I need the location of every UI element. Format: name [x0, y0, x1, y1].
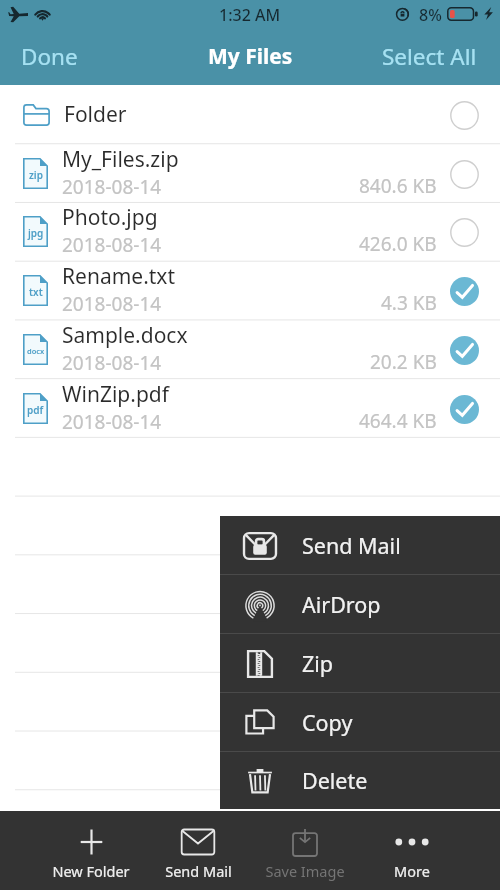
staticText: 4.3 KB [381, 290, 437, 316]
button[interactable]: Select All [364, 33, 500, 80]
button[interactable]: pdf [0, 379, 500, 438]
button[interactable]: Send Mail [220, 516, 500, 575]
staticText: Done [21, 41, 78, 72]
button[interactable]: Select Photo.jpg [444, 212, 484, 252]
staticText: jpg [28, 226, 44, 240]
staticText: AirDrop [302, 590, 381, 619]
staticText: 2018-08-14 [62, 291, 162, 317]
button[interactable]: Done [0, 33, 96, 80]
button[interactable]: jpg [0, 202, 500, 261]
staticText: Save Image [265, 861, 345, 881]
staticText: Sample.docx [62, 321, 188, 350]
staticText: 2018-08-14 [62, 350, 162, 376]
staticText: docx [27, 346, 45, 356]
staticText: zip [29, 168, 43, 182]
button[interactable]: Folder [0, 85, 500, 144]
button[interactable]: txt [0, 261, 500, 320]
staticText: Send Mail [302, 531, 401, 560]
button[interactable]: More [359, 811, 465, 890]
staticText: Zip [302, 649, 334, 678]
staticText: 20.2 KB [370, 349, 437, 375]
staticText: 1:32 AM [219, 4, 281, 26]
staticText: 2018-08-14 [62, 232, 162, 258]
button[interactable]: Select My_Files.zip [444, 154, 484, 194]
button[interactable]: zip [0, 144, 500, 203]
button[interactable]: Select Sample.docx [444, 330, 484, 370]
staticText: 426.0 KB [359, 231, 437, 257]
button[interactable]: Select WinZip.pdf [444, 389, 484, 429]
staticText: My_Files.zip [62, 145, 179, 174]
staticText: 464.4 KB [359, 408, 437, 434]
staticText: Folder [64, 100, 127, 129]
button[interactable]: Copy [220, 693, 500, 752]
button[interactable]: Select Folder [444, 95, 484, 135]
button[interactable]: docx [0, 320, 500, 379]
staticText: 2018-08-14 [62, 174, 162, 200]
staticText: pdf [27, 403, 44, 417]
button[interactable]: AirDrop [220, 575, 500, 634]
button[interactable]: Delete [220, 752, 500, 809]
button[interactable]: New Folder [38, 811, 144, 890]
staticText: Delete [302, 766, 368, 795]
button[interactable]: Send Mail [220, 516, 500, 809]
staticText: Copy [302, 708, 353, 737]
staticText: 840.6 KB [359, 173, 437, 199]
staticText: New Folder [52, 861, 130, 881]
staticText: 2018-08-14 [62, 409, 162, 435]
staticText: 8% [419, 4, 442, 26]
button[interactable]: Save Image [252, 811, 358, 890]
staticText: Select All [382, 41, 477, 72]
staticText: More [394, 861, 430, 881]
staticText: txt [29, 285, 43, 299]
staticText: WinZip.pdf [62, 380, 169, 409]
staticText: My Files [208, 42, 293, 71]
button[interactable]: Send Mail [145, 811, 251, 890]
staticText: Rename.txt [62, 262, 176, 291]
button[interactable]: Select Rename.txt [444, 271, 484, 311]
staticText: Photo.jpg [62, 203, 158, 232]
button[interactable]: Zip [220, 634, 500, 693]
staticText: Send Mail [165, 861, 232, 881]
